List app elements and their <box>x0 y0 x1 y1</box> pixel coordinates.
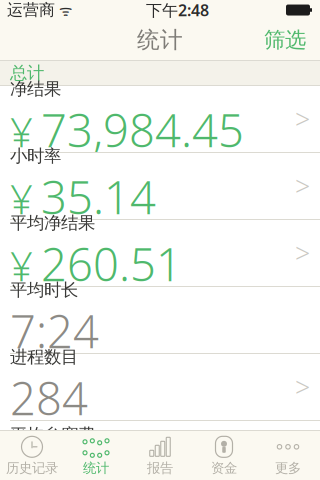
button[interactable]: 更多 <box>256 431 320 480</box>
staticText: ᯤ <box>55 0 72 20</box>
button[interactable]: 筛选 <box>254 21 316 59</box>
button[interactable]: 平均参赛费 <box>0 421 320 445</box>
staticText: 7:24 <box>10 300 99 361</box>
staticText: 统计 <box>137 26 183 54</box>
staticText: 总计 <box>10 62 44 84</box>
button[interactable]: 小时率 <box>0 153 320 219</box>
staticText: 平均参赛费 <box>10 424 95 446</box>
staticText: 284 <box>10 367 88 428</box>
staticText: 进程数目 <box>10 346 78 368</box>
staticText: ¥ <box>10 239 33 292</box>
button[interactable]: 平均净结果 <box>0 220 320 286</box>
button[interactable]: 资金 <box>192 431 256 480</box>
staticText: 运营商 <box>7 0 55 20</box>
staticText: > <box>295 168 310 204</box>
button[interactable]: 平均时长 <box>0 287 320 353</box>
staticText: 平均时长 <box>10 279 78 301</box>
staticText: 资金 <box>211 460 237 476</box>
staticText: 平均净结果 <box>10 212 95 234</box>
staticText: 筛选 <box>264 27 306 53</box>
button[interactable]: 历史记录 <box>0 431 64 480</box>
staticText: 下午2:48 <box>146 0 209 21</box>
staticText: > <box>295 101 310 137</box>
button[interactable]: 进程数目 <box>0 354 320 420</box>
staticText: 报告 <box>147 460 173 476</box>
staticText: 统计 <box>83 460 109 476</box>
staticText: ¥ <box>10 105 33 158</box>
button[interactable]: 报告 <box>128 431 192 480</box>
staticText: 73,984.45 <box>41 99 244 160</box>
staticText: > <box>295 369 310 405</box>
staticText: 35.14 <box>41 166 156 227</box>
staticText: ¥ <box>10 172 33 225</box>
staticText: 历史记录 <box>6 460 58 476</box>
staticText: 更多 <box>275 460 301 476</box>
staticText: 净结果 <box>10 78 61 100</box>
button[interactable]: 统计 <box>64 431 128 480</box>
staticText: 小时率 <box>10 145 61 167</box>
staticText: 260.51 <box>41 233 182 294</box>
button[interactable]: 净结果 <box>0 86 320 152</box>
staticText: > <box>295 235 310 271</box>
